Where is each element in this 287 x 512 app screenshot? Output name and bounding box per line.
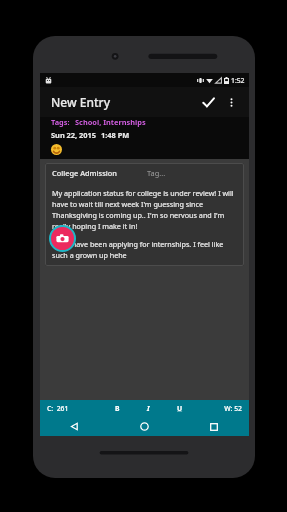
button[interactable]: U: [164, 400, 195, 417]
button[interactable]: Save entry: [197, 91, 219, 113]
staticText: Tags:: [51, 117, 70, 127]
staticText: C: 261: [47, 404, 102, 413]
staticText: 1:48 PM: [101, 130, 130, 140]
staticText: I: [147, 404, 150, 413]
button[interactable]: B: [102, 400, 133, 417]
staticText: U: [177, 404, 183, 413]
button[interactable]: Home: [109, 417, 179, 436]
staticText: Tag...: [147, 168, 166, 178]
staticText: College Admission: [52, 168, 117, 178]
staticText: B: [115, 404, 120, 413]
staticText: Sun 22, 2015: [51, 130, 96, 140]
button[interactable]: Recent apps: [179, 417, 249, 436]
button[interactable]: Mood: [51, 144, 62, 155]
button[interactable]: I: [133, 400, 164, 417]
staticText: I also have been applying for internship…: [52, 239, 237, 260]
button[interactable]: Back: [40, 417, 109, 436]
staticText: School, Internships: [75, 117, 146, 127]
button[interactable]: Add photo: [51, 227, 74, 250]
staticText: New Entry: [51, 94, 197, 110]
staticText: W: 52: [195, 404, 242, 413]
button[interactable]: More options: [222, 93, 240, 111]
staticText: My application status for college is und…: [52, 188, 237, 231]
staticText: 1:52: [231, 76, 245, 85]
